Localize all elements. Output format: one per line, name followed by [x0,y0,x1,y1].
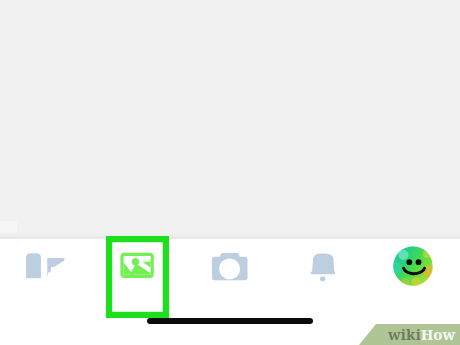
button[interactable]: Camera [210,250,250,284]
button[interactable]: Photos [106,236,169,318]
staticText: wiki [388,324,421,344]
button[interactable]: Notifications [306,250,340,284]
button[interactable]: Profile [393,246,433,286]
button[interactable]: Stickers [20,248,68,286]
staticText: How [421,324,456,344]
